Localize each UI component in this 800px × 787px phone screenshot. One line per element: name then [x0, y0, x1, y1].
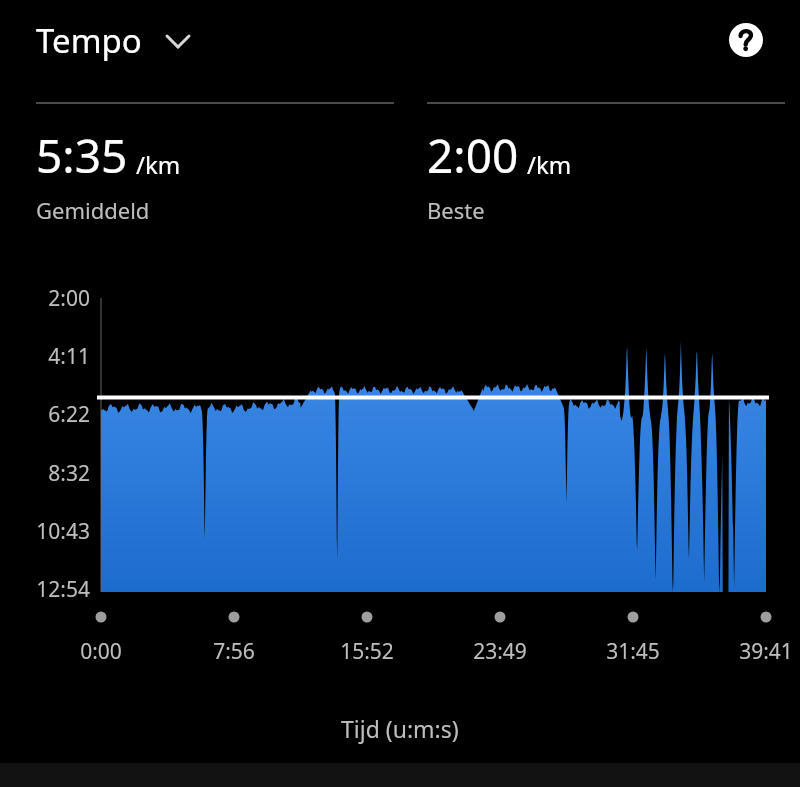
- staticText: 10:43: [0, 517, 90, 546]
- staticText: 23:49: [440, 637, 560, 666]
- staticText: Tempo: [36, 18, 142, 63]
- staticText: 31:45: [573, 637, 693, 666]
- staticText: 6:22: [0, 400, 90, 429]
- staticText: 39:41: [706, 637, 800, 666]
- button[interactable]: 2:00: [427, 102, 785, 225]
- staticText: /km: [136, 148, 181, 181]
- button[interactable]: Help: [722, 16, 770, 64]
- staticText: 8:32: [0, 459, 90, 488]
- staticText: 2:00: [0, 284, 90, 313]
- staticText: 2:00: [427, 124, 519, 187]
- staticText: 4:11: [0, 342, 90, 371]
- staticText: 0:00: [41, 637, 161, 666]
- staticText: /km: [527, 148, 572, 181]
- button[interactable]: Tempo: [36, 18, 200, 63]
- staticText: 5:35: [36, 124, 128, 187]
- button[interactable]: 5:35: [36, 102, 394, 225]
- staticText: Tijd (u:m:s): [341, 713, 459, 744]
- staticText: Gemiddeld: [36, 195, 150, 225]
- staticText: 12:54: [0, 575, 90, 604]
- staticText: 7:56: [174, 637, 294, 666]
- staticText: Beste: [427, 195, 485, 225]
- staticText: 15:52: [307, 637, 427, 666]
